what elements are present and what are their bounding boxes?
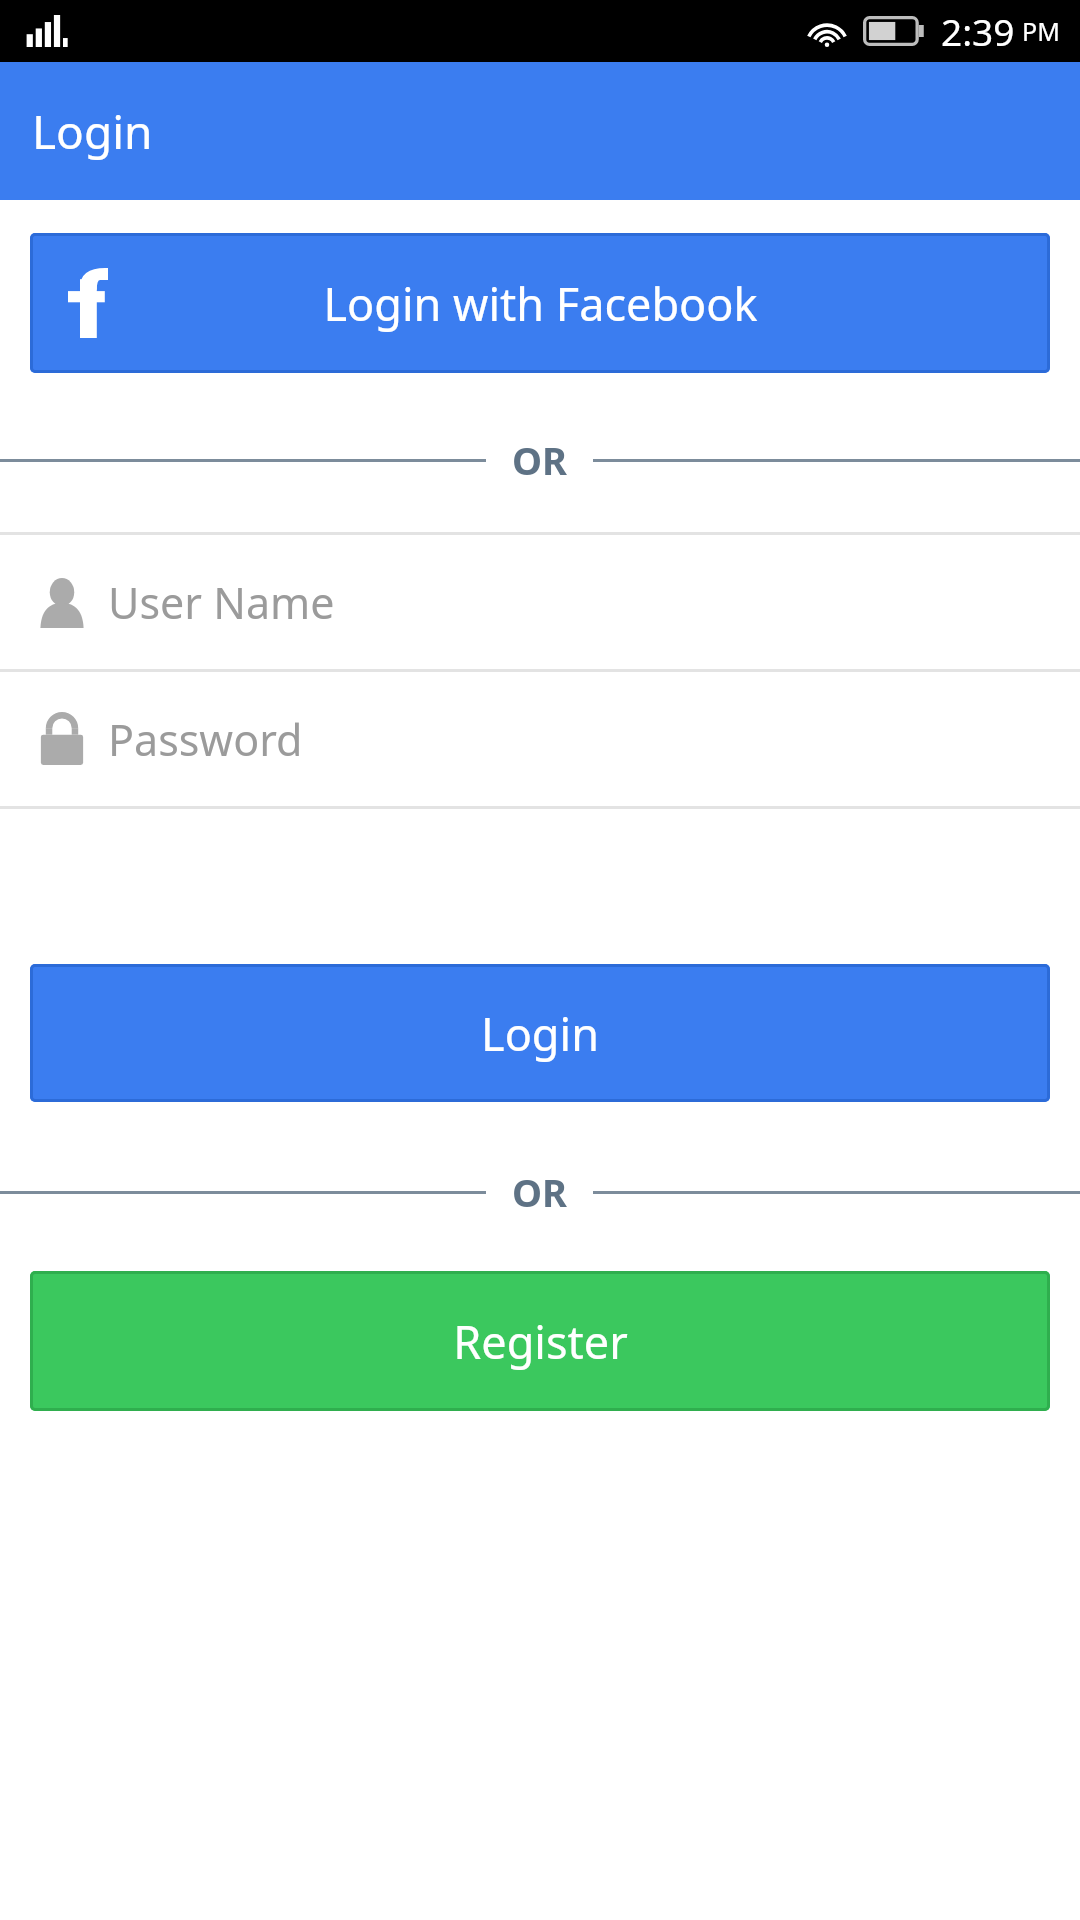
button[interactable]: User Name xyxy=(0,535,1080,669)
other: Facebook xyxy=(68,268,108,338)
staticText: Login xyxy=(32,100,153,163)
staticText: OR xyxy=(512,434,567,486)
button[interactable]: Login xyxy=(30,964,1050,1102)
staticText: User Name xyxy=(108,573,335,632)
staticText: Login with Facebook xyxy=(323,273,758,334)
button[interactable]: Password xyxy=(0,672,1080,806)
staticText: Register xyxy=(453,1311,628,1372)
staticText: PM xyxy=(1022,14,1060,48)
staticText: 2:39 xyxy=(941,6,1015,56)
staticText: Login xyxy=(481,1003,599,1064)
button[interactable]: Register xyxy=(30,1271,1050,1411)
staticText: Password xyxy=(108,710,303,769)
staticText: OR xyxy=(512,1166,567,1218)
button[interactable]: Facebook xyxy=(30,233,1050,373)
